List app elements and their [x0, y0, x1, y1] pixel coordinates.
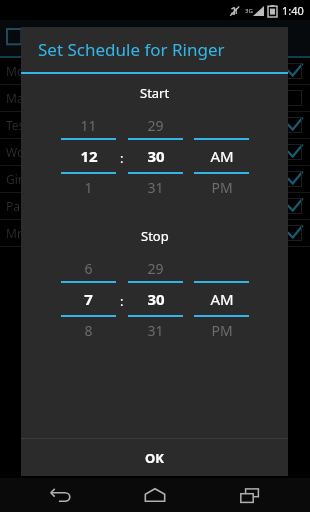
staticText: :: [120, 292, 124, 310]
staticText: Mr: [6, 225, 22, 241]
button[interactable]: 30: [128, 283, 183, 315]
staticText: AM: [210, 289, 234, 309]
staticText: Start: [140, 84, 170, 102]
button[interactable]: Home: [120, 478, 190, 512]
button[interactable]: Decrement: [61, 317, 116, 343]
staticText: Gir: [6, 171, 23, 187]
button[interactable]: Decrement: [194, 174, 249, 200]
button[interactable]: Mo: [0, 58, 310, 84]
staticText: 12: [80, 146, 98, 166]
button[interactable]: Ma: [0, 85, 310, 111]
staticText: 8: [84, 321, 93, 340]
button[interactable]: Increment: [61, 112, 116, 138]
button[interactable]: AM: [194, 283, 249, 315]
staticText: 31: [147, 178, 164, 197]
button[interactable]: OK: [21, 439, 288, 476]
button[interactable]: Tes: [0, 112, 310, 138]
button[interactable]: 7: [61, 283, 116, 315]
button[interactable]: Decrement: [61, 174, 116, 200]
button[interactable]: Increment: [61, 255, 116, 281]
button[interactable]: Decrement: [194, 317, 249, 343]
button[interactable]: Wo: [0, 139, 310, 165]
staticText: :: [120, 149, 124, 167]
staticText: Tes: [6, 117, 25, 133]
staticText: 29: [147, 259, 164, 278]
staticText: 1:40: [282, 3, 304, 18]
button[interactable]: AM: [194, 140, 249, 172]
staticText: Wo: [6, 144, 25, 160]
staticText: 7: [84, 289, 93, 309]
staticText: 11: [80, 116, 97, 135]
staticText: AM: [210, 146, 234, 166]
button[interactable]: Decrement: [128, 317, 183, 343]
staticText: 1: [84, 178, 93, 197]
staticText: 29: [147, 116, 164, 135]
staticText: 3G: [245, 7, 253, 15]
staticText: 31: [147, 321, 164, 340]
staticText: OK: [145, 449, 164, 467]
button[interactable]: Recent apps: [215, 478, 285, 512]
staticText: 30: [147, 146, 165, 166]
staticText: PM: [211, 321, 233, 340]
staticText: Pa: [6, 198, 20, 214]
button[interactable]: Back: [25, 478, 95, 512]
button[interactable]: Decrement: [128, 174, 183, 200]
staticText: Ma: [6, 90, 24, 106]
button[interactable]: Gir: [0, 166, 310, 192]
button[interactable]: Increment: [128, 255, 183, 281]
button[interactable]: Pa: [0, 193, 310, 219]
button[interactable]: Mr: [0, 220, 310, 246]
button[interactable]: 30: [128, 140, 183, 172]
staticText: Set Schedule for Ringer: [38, 38, 225, 61]
staticText: 30: [147, 289, 165, 309]
staticText: Stop: [141, 227, 169, 245]
staticText: PM: [211, 178, 233, 197]
button[interactable]: Increment: [128, 112, 183, 138]
staticText: Mo: [6, 63, 25, 79]
button[interactable]: 12: [61, 140, 116, 172]
staticText: 6: [84, 259, 93, 278]
